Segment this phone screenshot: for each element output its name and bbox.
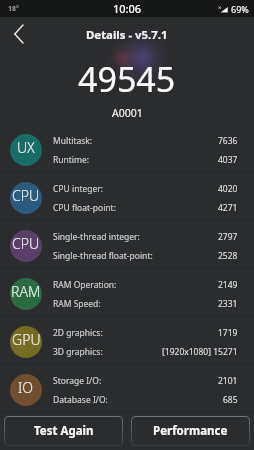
button[interactable]: Performance <box>131 416 250 446</box>
staticText: CPU <box>12 186 40 205</box>
staticText: 2D graphics: <box>53 327 103 339</box>
staticText: GPU <box>12 330 41 349</box>
staticText: 2528 <box>218 250 238 262</box>
staticText: Runtime: <box>53 154 90 166</box>
staticText: 1719 <box>218 327 238 339</box>
staticText: UX <box>17 138 35 157</box>
button[interactable]: IO <box>0 365 254 412</box>
staticText: RAM Speed: <box>53 298 101 310</box>
staticText: 4020 <box>218 183 238 195</box>
staticText: IO <box>18 378 34 397</box>
staticText: Single-thread float-point: <box>53 250 153 262</box>
staticText: 3D graphics: <box>53 346 103 358</box>
staticText: RAM Operation: <box>53 279 117 291</box>
staticText: Multitask: <box>53 135 93 147</box>
staticText: 7636 <box>218 135 238 147</box>
staticText: 10:06 <box>113 1 142 16</box>
staticText: 2149 <box>218 279 238 291</box>
staticText: A0001 <box>112 106 143 120</box>
staticText: 2797 <box>218 231 238 243</box>
button[interactable]: CPU <box>0 173 254 220</box>
staticText: Database I/O: <box>53 394 108 406</box>
staticText: 685 <box>223 394 238 406</box>
staticText: Test Again <box>34 423 94 439</box>
staticText: Details - v5.7.1 <box>86 27 168 43</box>
staticText: RAM <box>11 282 41 301</box>
staticText: [1920x1080] 15271 <box>162 346 238 358</box>
staticText: CPU float-point: <box>53 202 116 214</box>
staticText: CPU integer: <box>53 183 104 195</box>
staticText: 18° <box>8 4 19 14</box>
staticText: 2101 <box>218 375 238 387</box>
staticText: CPU <box>12 234 40 253</box>
staticText: 4037 <box>218 154 238 166</box>
staticText: 49545 <box>78 56 176 102</box>
staticText: 2331 <box>218 298 238 310</box>
staticText: Storage I/O: <box>53 375 102 387</box>
button[interactable]: UX <box>0 125 254 172</box>
button[interactable]: RAM <box>0 269 254 316</box>
staticText: 69% <box>231 3 249 15</box>
button[interactable]: Test Again <box>4 416 123 446</box>
button[interactable]: CPU <box>0 221 254 268</box>
button[interactable]: Back <box>0 17 36 50</box>
staticText: 4271 <box>218 202 238 214</box>
staticText: Performance <box>153 423 228 439</box>
staticText: Single-thread integer: <box>53 231 140 243</box>
button[interactable]: GPU <box>0 317 254 364</box>
